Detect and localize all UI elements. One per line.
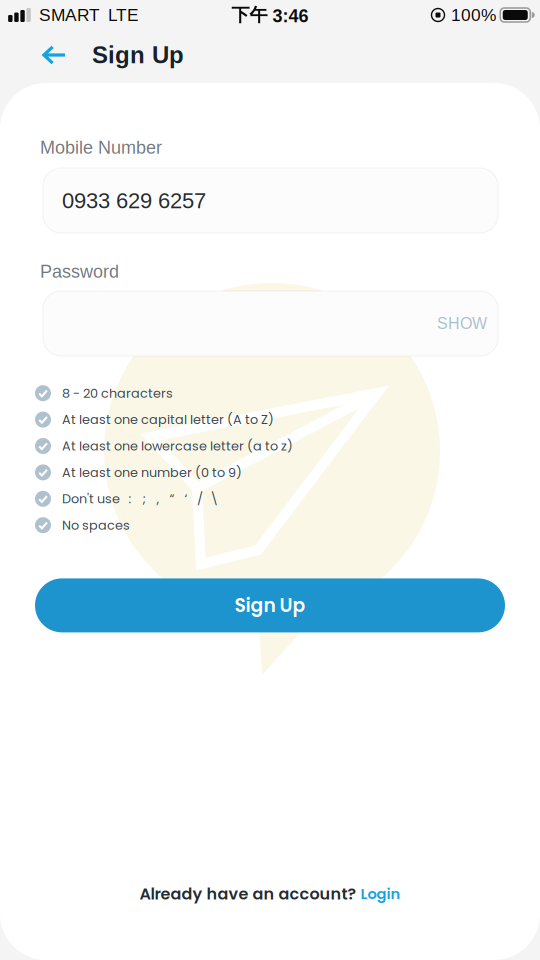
staticText: 0933 629 6257 <box>62 188 206 213</box>
staticText: Already have an account? <box>139 883 360 905</box>
staticText: ; <box>142 490 145 508</box>
staticText: Mobile Number <box>40 137 162 157</box>
staticText: : <box>128 490 131 508</box>
staticText: LTE <box>108 5 139 25</box>
staticText: No spaces <box>62 516 130 534</box>
staticText: “ <box>169 490 174 508</box>
staticText: \ <box>210 490 218 508</box>
staticText: Login <box>360 883 400 904</box>
staticText: SHOW <box>437 315 487 332</box>
staticText: Don't use <box>62 490 120 508</box>
staticText: At least one capital letter (A to Z) <box>62 411 274 428</box>
staticText: At least one lowercase letter (a to z) <box>62 437 293 455</box>
button[interactable]: Back <box>0 30 92 80</box>
staticText: / <box>197 490 203 508</box>
staticText: 100% <box>451 5 496 25</box>
staticText: At least one number (0 to 9) <box>62 463 242 481</box>
staticText: Sign Up <box>234 592 305 618</box>
button[interactable]: Sign Up <box>35 578 505 632</box>
staticText: Password <box>40 261 119 281</box>
staticText: , <box>156 490 159 508</box>
staticText: 8 - 20 characters <box>62 384 173 402</box>
button[interactable]: SHOW <box>43 291 498 356</box>
staticText: SMART <box>39 5 100 25</box>
staticText: 下午 3:46 <box>231 4 308 26</box>
staticText: Sign Up <box>92 42 184 68</box>
staticText: ‘ <box>184 490 187 508</box>
button[interactable]: Login <box>360 883 400 904</box>
